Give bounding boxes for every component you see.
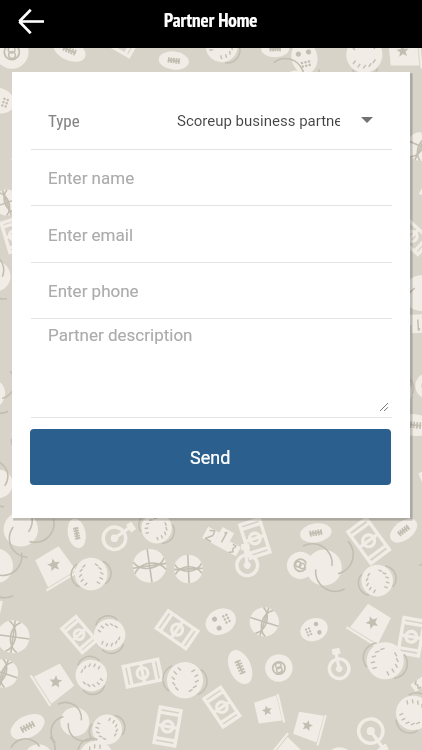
- button[interactable]: Enter name: [31, 149, 392, 205]
- staticText: Send: [190, 447, 231, 468]
- staticText: Partner description: [48, 325, 193, 345]
- button[interactable]: Enter phone: [31, 262, 392, 318]
- button[interactable]: Partner description: [31, 318, 392, 417]
- button[interactable]: Type: [31, 92, 392, 149]
- button[interactable]: Back: [11, 1, 51, 41]
- button[interactable]: Send: [30, 429, 391, 485]
- staticText: Enter name: [48, 168, 135, 188]
- button[interactable]: Enter email: [31, 205, 392, 262]
- staticText: Enter email: [48, 225, 134, 245]
- staticText: Partner Home: [164, 8, 258, 33]
- staticText: Scoreup business partner: [177, 112, 340, 130]
- staticText: Enter phone: [48, 281, 139, 301]
- staticText: Type: [48, 111, 80, 131]
